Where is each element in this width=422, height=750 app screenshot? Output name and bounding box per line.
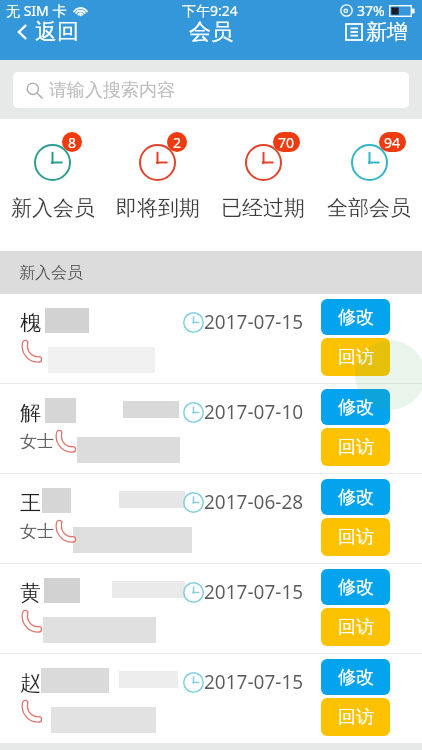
button[interactable]: 请输入搜索内容 [13, 72, 409, 108]
button[interactable]: 回访 [321, 698, 390, 736]
staticText: 回访 [338, 526, 374, 549]
staticText: 返回 [35, 18, 79, 46]
button[interactable]: 修改 [321, 389, 390, 425]
button[interactable]: 赵 [0, 654, 422, 744]
staticText: 修改 [338, 396, 374, 419]
staticText: 即将到期 [116, 195, 200, 221]
staticText: 新入会员 [19, 263, 83, 283]
button[interactable]: 修改 [321, 569, 390, 605]
staticText: 槐 [20, 310, 41, 336]
staticText: 37% [357, 1, 385, 20]
staticText: 修改 [338, 666, 374, 689]
button[interactable]: 2 [105, 130, 210, 221]
button[interactable]: 修改 [321, 479, 390, 515]
staticText: 回访 [338, 616, 374, 639]
button[interactable]: 回访 [321, 608, 390, 646]
staticText: 会员 [189, 18, 233, 46]
staticText: 修改 [338, 576, 374, 599]
button[interactable]: Back [14, 18, 79, 46]
staticText: 王 [20, 490, 41, 516]
staticText: 2 [173, 133, 182, 152]
staticText: 回访 [338, 436, 374, 459]
staticText: 70 [278, 133, 295, 152]
staticText: 回访 [338, 706, 374, 729]
staticText: 解 [20, 400, 41, 426]
button[interactable]: 修改 [321, 299, 390, 335]
staticText: 2017-07-10 [204, 399, 304, 425]
staticText: 已经过期 [221, 195, 305, 221]
staticText: 2017-07-15 [204, 669, 304, 695]
staticText: 请输入搜索内容 [49, 79, 175, 102]
staticText: 无 SIM 卡 [6, 1, 67, 20]
button[interactable]: 8 [0, 130, 105, 221]
staticText: 全部会员 [327, 195, 411, 221]
button[interactable]: 槐 [0, 294, 422, 384]
staticText: 下午9:24 [182, 1, 238, 20]
button[interactable]: 王 [0, 474, 422, 564]
staticText: 新入会员 [11, 195, 95, 221]
staticText: 94 [384, 133, 401, 152]
button[interactable]: 黄 [0, 564, 422, 654]
staticText: 2017-06-28 [204, 489, 304, 515]
staticText: 2017-07-15 [204, 579, 304, 605]
staticText: 8 [68, 133, 77, 152]
staticText: 女士 [20, 521, 54, 542]
button[interactable]: 回访 [321, 428, 390, 466]
staticText: 新增 [366, 19, 408, 45]
staticText: 回访 [338, 346, 374, 369]
staticText: 修改 [338, 306, 374, 329]
button[interactable]: 回访 [321, 338, 390, 376]
button[interactable]: 修改 [321, 659, 390, 695]
button[interactable]: 回访 [321, 518, 390, 556]
button[interactable]: 解 [0, 384, 422, 474]
other: Back [14, 24, 30, 40]
staticText: 黄 [20, 580, 41, 606]
button[interactable]: 70 [210, 130, 316, 221]
staticText: 修改 [338, 486, 374, 509]
button[interactable]: 新增 [344, 19, 408, 45]
staticText: 赵 [20, 670, 41, 696]
staticText: 2017-07-15 [204, 309, 304, 335]
button[interactable]: 94 [316, 130, 422, 221]
staticText: 女士 [20, 431, 54, 452]
